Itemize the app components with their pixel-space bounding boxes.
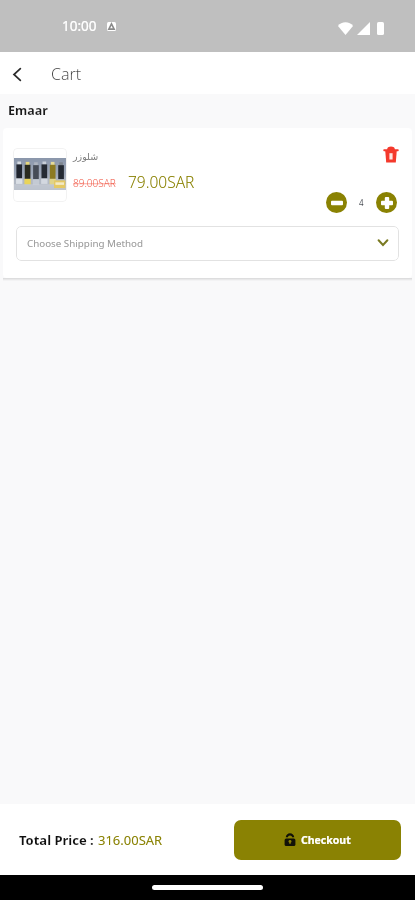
staticText: Total Price :: [19, 831, 98, 849]
staticText: 316.00SAR: [98, 831, 163, 849]
staticText: 79.00SAR: [128, 171, 195, 192]
staticText: Choose Shipping Method: [27, 237, 143, 250]
staticText: Checkout: [301, 833, 351, 847]
button[interactable]: Decrease quantity: [326, 192, 347, 213]
button[interactable]: Increase quantity: [376, 192, 397, 213]
button[interactable]: Back: [0, 52, 34, 94]
staticText: Emaar: [8, 102, 48, 119]
button[interactable]: Checkout: [234, 820, 401, 860]
staticText: Cart: [51, 63, 82, 85]
staticText: 10:00: [62, 17, 97, 35]
button[interactable]: Delete item: [377, 141, 405, 169]
staticText: 89.00SAR: [73, 176, 116, 190]
staticText: شلوزر: [73, 151, 99, 162]
button[interactable]: Choose Shipping Method: [16, 226, 399, 261]
staticText: 4: [359, 197, 364, 208]
